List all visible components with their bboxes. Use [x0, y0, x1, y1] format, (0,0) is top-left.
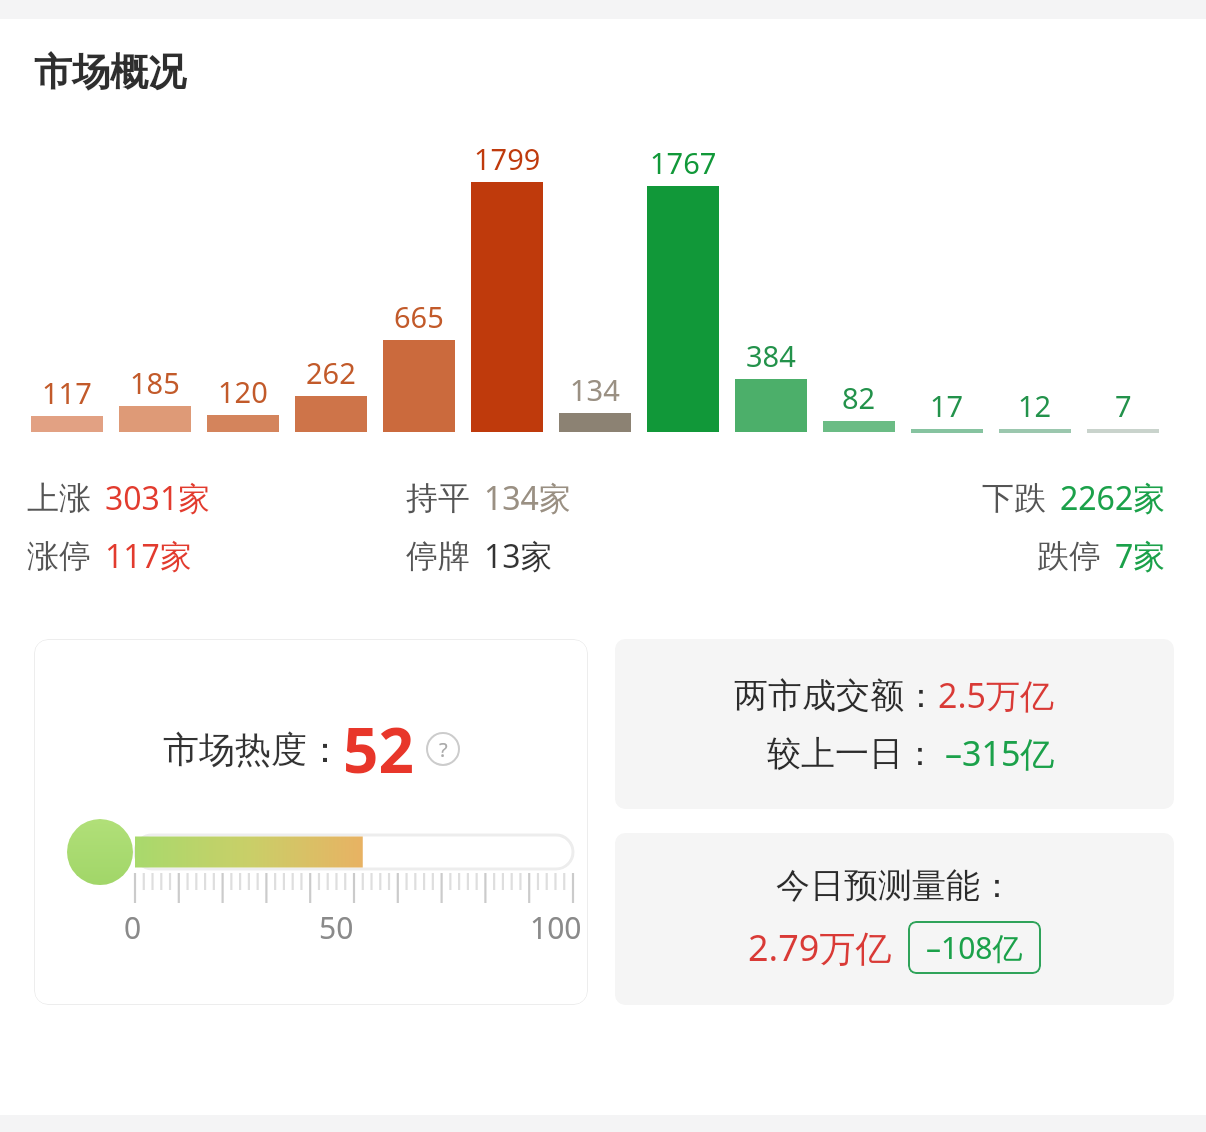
staticText: 2.5万亿 — [938, 672, 1055, 718]
staticText: 市场热度： — [163, 727, 343, 772]
staticText: 2262家 — [1060, 476, 1166, 520]
staticText: 185 — [130, 363, 180, 402]
staticText: –108亿 — [926, 927, 1023, 968]
staticText: 134家 — [484, 476, 571, 520]
button[interactable]: 665 — [383, 119, 455, 449]
staticText: 117家 — [105, 534, 192, 578]
staticText: 3031家 — [105, 476, 211, 520]
staticText: 停牌 — [406, 536, 470, 576]
button[interactable]: 134 — [559, 119, 631, 449]
staticText: 117 — [42, 373, 92, 412]
staticText: 市场概况 — [34, 48, 186, 96]
button[interactable]: 120 — [207, 119, 279, 449]
staticText: 0 — [124, 907, 142, 948]
button[interactable]: 17 — [911, 119, 983, 449]
staticText: –315亿 — [945, 730, 1055, 776]
button[interactable]: 117 — [31, 119, 103, 449]
button[interactable]: 帮助 — [426, 732, 460, 766]
button[interactable]: 384 — [735, 119, 807, 449]
staticText: 持平 — [406, 478, 470, 518]
staticText: 两市成交额： — [734, 674, 938, 717]
staticText: 82 — [842, 378, 876, 417]
button[interactable]: 7 — [1087, 119, 1159, 449]
button[interactable]: 两市成交额： — [615, 639, 1174, 809]
staticText: 13家 — [484, 534, 553, 578]
staticText: 384 — [746, 336, 796, 375]
staticText: 52 — [343, 707, 414, 791]
staticText: ? — [439, 736, 448, 763]
staticText: 100 — [530, 907, 582, 948]
staticText: 较上一日： — [767, 732, 937, 775]
staticText: 50 — [319, 907, 354, 948]
button[interactable]: 185 — [119, 119, 191, 449]
button[interactable]: –108亿 — [926, 927, 1023, 968]
button[interactable]: 1799 — [471, 119, 543, 449]
staticText: 今日预测量能： — [776, 864, 1014, 907]
button[interactable]: 今日预测量能： — [615, 833, 1174, 1005]
staticText: 262 — [306, 353, 356, 392]
button[interactable]: 1767 — [647, 119, 719, 449]
staticText: 下跌 — [982, 478, 1046, 518]
staticText: 上涨 — [27, 478, 91, 518]
staticText: 2.79万亿 — [748, 923, 892, 972]
button[interactable]: 市场热度： — [34, 639, 588, 1005]
staticText: 134 — [570, 370, 620, 409]
staticText: 跌停 — [1037, 536, 1101, 576]
staticText: 1767 — [650, 143, 717, 182]
staticText: 涨停 — [27, 536, 91, 576]
staticText: 7 — [1115, 386, 1132, 425]
button[interactable]: 82 — [823, 119, 895, 449]
button[interactable]: 262 — [295, 119, 367, 449]
staticText: 7家 — [1115, 534, 1166, 578]
staticText: 12 — [1018, 386, 1052, 425]
staticText: 120 — [218, 372, 268, 411]
staticText: 17 — [930, 386, 964, 425]
button[interactable]: 12 — [999, 119, 1071, 449]
staticText: 1799 — [474, 139, 541, 178]
staticText: 665 — [394, 297, 444, 336]
